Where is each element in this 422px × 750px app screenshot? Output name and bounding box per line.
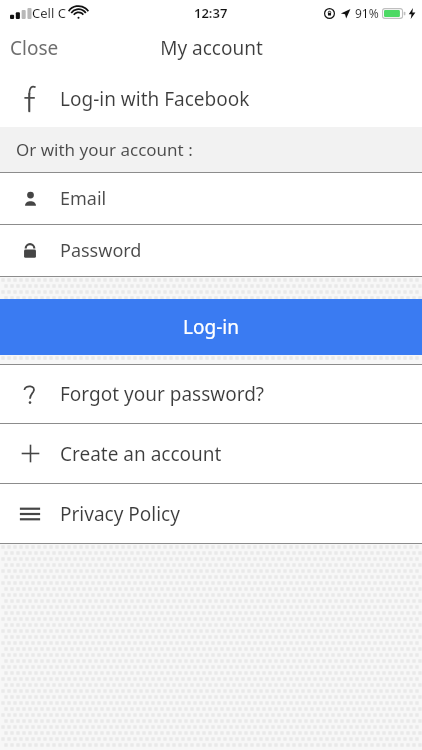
staticText: Cell C [32,4,66,22]
staticText: Log-in with Facebook [60,86,250,112]
button[interactable]: Create an account [0,424,422,483]
staticText: Close [10,35,59,61]
staticText: Forgot your password? [60,381,265,407]
button[interactable]: Forgot your password? [0,365,422,423]
button[interactable]: Log-in with Facebook [0,70,422,127]
staticText: Create an account [60,441,222,467]
button[interactable]: Close [0,26,84,70]
button[interactable]: Email [0,173,422,224]
staticText: 91% [355,5,379,21]
staticText: 12:37 [194,4,228,22]
staticText: Privacy Policy [60,501,180,527]
staticText: Or with your account : [16,138,193,161]
button[interactable]: Password [0,225,422,276]
staticText: Password [60,238,142,263]
button[interactable]: Log-in [0,299,422,355]
button[interactable]: Privacy Policy [0,484,422,543]
staticText: My account [160,35,263,61]
staticText: Email [60,186,107,211]
staticText: Log-in [183,314,239,340]
